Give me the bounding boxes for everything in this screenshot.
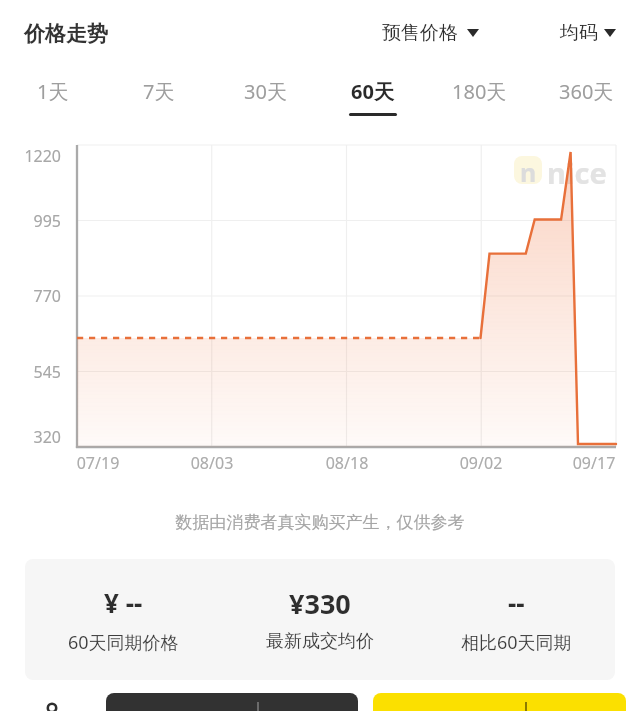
staticText: 770 — [0, 285, 61, 307]
button[interactable]: 价格走势 — [24, 3, 108, 65]
staticText: 相比60天同期 — [461, 630, 572, 655]
staticText: ¥ -- — [104, 585, 143, 620]
button[interactable]: 客服 — [30, 690, 74, 711]
staticText: 7天 — [143, 78, 175, 105]
button[interactable]: 60天 — [319, 62, 426, 120]
staticText: n — [520, 156, 537, 183]
staticText: 09/17 — [554, 452, 634, 474]
staticText: 60天同期价格 — [68, 630, 179, 655]
button[interactable]: 加入购物车 — [106, 693, 358, 711]
staticText: 数据由消费者真实购买产生，仅供参考 — [0, 512, 640, 533]
staticText: 320 — [0, 426, 61, 448]
staticText: 1天 — [37, 78, 69, 105]
staticText: 180天 — [452, 78, 507, 105]
staticText: 545 — [0, 361, 61, 383]
staticText: 07/19 — [58, 452, 138, 474]
button[interactable]: 30天 — [212, 62, 319, 120]
staticText: 360天 — [559, 78, 614, 105]
button[interactable]: 均码 — [560, 16, 616, 50]
staticText: -- — [508, 585, 525, 620]
staticText: 1220 — [0, 145, 61, 167]
button[interactable]: 7天 — [106, 62, 212, 120]
staticText: 08/18 — [307, 452, 387, 474]
staticText: nice — [547, 153, 607, 192]
staticText: 价格走势 — [24, 21, 108, 47]
button[interactable]: 立即购买 — [373, 693, 626, 711]
staticText: 30天 — [244, 78, 287, 105]
staticText: 08/03 — [172, 452, 252, 474]
button[interactable]: 预售价格 — [382, 16, 479, 50]
button[interactable]: 360天 — [533, 62, 640, 120]
staticText: 预售价格 — [382, 21, 458, 45]
staticText: 均码 — [560, 21, 598, 45]
staticText: 995 — [0, 210, 61, 232]
staticText: 60天 — [351, 78, 394, 105]
button[interactable]: 180天 — [426, 62, 533, 120]
staticText: ¥330 — [289, 585, 351, 622]
button[interactable]: 1天 — [0, 62, 106, 120]
staticText: 09/02 — [441, 452, 521, 474]
staticText: 最新成交均价 — [266, 630, 374, 653]
